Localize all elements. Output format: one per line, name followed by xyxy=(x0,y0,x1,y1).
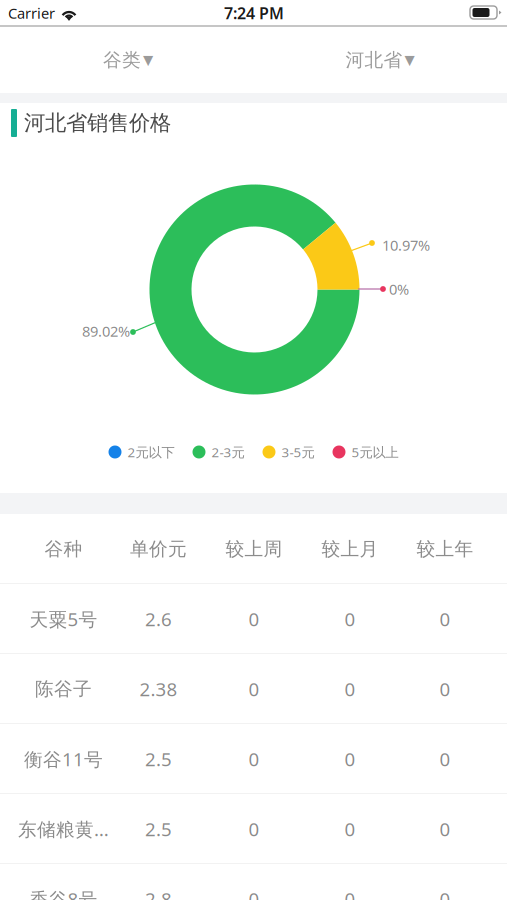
staticText: 单价元 xyxy=(130,537,187,560)
staticText: 7:24 PM xyxy=(224,2,284,24)
staticText: 0 xyxy=(439,817,450,841)
staticText: 陈谷子 xyxy=(35,677,92,700)
staticText: 东储粮黄… xyxy=(18,817,109,841)
staticText: 0 xyxy=(439,677,450,701)
staticText: 较上年 xyxy=(416,537,473,560)
staticText: 89.02% xyxy=(82,321,130,341)
staticText: 0 xyxy=(248,607,259,631)
staticText: 0 xyxy=(439,887,450,900)
staticText: 0 xyxy=(344,817,355,841)
staticText: Carrier xyxy=(8,3,55,23)
staticText: 河北省 xyxy=(345,48,402,71)
staticText: 香谷8号 xyxy=(29,887,97,900)
staticText: 较上周 xyxy=(225,537,282,560)
staticText: 较上月 xyxy=(321,537,378,560)
staticText: 2.38 xyxy=(139,677,177,701)
staticText: 0 xyxy=(439,607,450,631)
staticText: 2.8 xyxy=(145,887,172,900)
staticText: 0 xyxy=(248,747,259,771)
staticText: 谷种 xyxy=(44,537,82,560)
button[interactable]: 谷类 xyxy=(63,35,193,85)
staticText: 0 xyxy=(248,677,259,701)
staticText: 2.6 xyxy=(145,607,172,631)
staticText: 衡谷11号 xyxy=(24,747,103,771)
staticText: 0 xyxy=(248,817,259,841)
staticText: 2.5 xyxy=(145,747,172,771)
staticText: 谷类 xyxy=(103,48,141,71)
staticText: 2.5 xyxy=(145,817,172,841)
staticText: ▼ xyxy=(404,52,414,67)
staticText: 0 xyxy=(344,677,355,701)
staticText: 10.97% xyxy=(382,235,430,255)
staticText: 0 xyxy=(248,887,259,900)
staticText: ▼ xyxy=(143,52,153,67)
staticText: 2-3元 xyxy=(211,443,244,461)
staticText: 河北省销售价格 xyxy=(24,110,171,136)
staticText: 天粟5号 xyxy=(29,607,97,631)
button[interactable]: 河北省 xyxy=(310,35,450,85)
staticText: 0 xyxy=(344,887,355,900)
staticText: 3-5元 xyxy=(281,443,314,461)
staticText: 2元以下 xyxy=(127,443,174,461)
staticText: 0 xyxy=(439,747,450,771)
staticText: 0% xyxy=(389,279,409,299)
staticText: 0 xyxy=(344,747,355,771)
staticText: 0 xyxy=(344,607,355,631)
staticText: 5元以上 xyxy=(351,443,398,461)
